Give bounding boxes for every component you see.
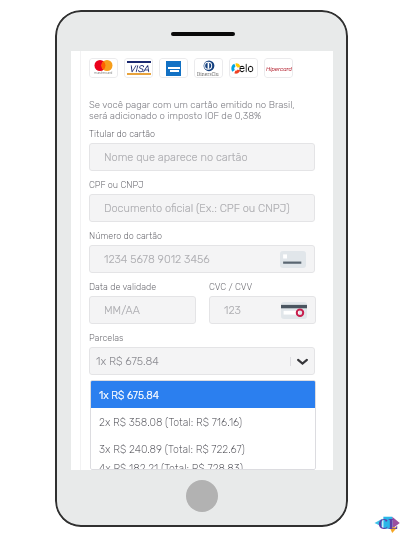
staticText: 4x R$ 182.21 (Total: R$ 728.83)	[99, 462, 244, 469]
button[interactable]: 4x R$ 182.21 (Total: R$ 728.83)	[91, 462, 315, 469]
staticText: Hipercard	[266, 65, 292, 72]
staticText: DinersClub	[197, 71, 221, 78]
button[interactable]: 1234 5678 9012 3456	[89, 245, 315, 273]
button[interactable]: Home	[186, 480, 218, 512]
staticText: 1x R$ 675.84	[99, 389, 159, 401]
button[interactable]: 1x R$ 675.84	[89, 347, 315, 375]
staticText: Titular do cartão	[89, 129, 156, 140]
staticText: elo	[239, 62, 254, 74]
button[interactable]: Nome que aparece no cartão	[89, 143, 315, 171]
button[interactable]: MM/AA	[89, 296, 196, 324]
staticText: mastercard	[94, 71, 113, 75]
staticText: 1x R$ 675.84	[96, 355, 159, 368]
staticText: 3x R$ 240.89 (Total: R$ 722.67)	[99, 443, 245, 455]
button[interactable]: Documento oficial (Ex.: CPF ou CNPJ)	[89, 194, 315, 222]
button[interactable]: 3x R$ 240.89 (Total: R$ 722.67)	[91, 435, 315, 462]
staticText: CPF ou CNPJ	[89, 180, 144, 191]
staticText: 2x R$ 358.08 (Total: R$ 716.16)	[99, 416, 243, 428]
staticText: Parcelas	[89, 333, 124, 344]
button[interactable]: 1x R$ 675.84	[91, 381, 315, 408]
staticText: MM/AA	[104, 304, 140, 317]
staticText: Data de validade	[89, 282, 157, 293]
staticText: CVC / CVV	[209, 282, 253, 293]
staticText: 123	[224, 304, 241, 317]
button[interactable]: 2x R$ 358.08 (Total: R$ 716.16)	[91, 408, 315, 435]
staticText: Documento oficial (Ex.: CPF ou CNPJ)	[104, 202, 290, 215]
staticText: CL	[378, 513, 398, 533]
staticText: Se você pagar com um cartão emitido no B…	[89, 99, 295, 121]
staticText: VISA	[129, 63, 150, 74]
staticText: 1234 5678 9012 3456	[104, 253, 210, 266]
staticText: Número do cartão	[89, 231, 163, 242]
staticText: Nome que aparece no cartão	[104, 151, 248, 164]
button[interactable]: 123	[209, 296, 316, 324]
